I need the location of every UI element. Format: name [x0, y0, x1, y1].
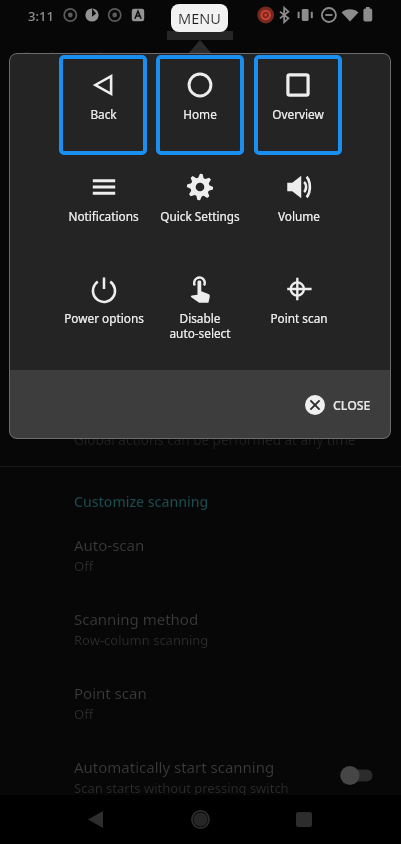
button[interactable]: Volume — [251, 156, 346, 248]
staticText: CLOSE — [333, 397, 371, 414]
staticText: Switch Access — [20, 44, 162, 74]
staticText: Off — [74, 705, 94, 723]
staticText: Row-column scanning — [74, 631, 209, 649]
button[interactable]: Point scan — [74, 683, 147, 723]
button[interactable]: Automatically start scanning toggle — [332, 760, 384, 792]
button[interactable]: Automatically start scanning — [74, 757, 289, 797]
staticText: Point scan — [74, 683, 147, 703]
button[interactable]: Quick Settings — [152, 156, 247, 248]
button[interactable]: Point scan — [251, 258, 346, 350]
button[interactable]: Auto-scan — [74, 535, 145, 575]
staticText: Scanning method — [74, 609, 199, 629]
staticText: MENU — [178, 8, 221, 28]
staticText: Point scan — [270, 310, 328, 326]
staticText: Off — [74, 557, 94, 575]
button[interactable]: Home — [156, 55, 244, 155]
button[interactable]: Home — [176, 795, 225, 844]
staticText: 3:11 — [28, 7, 54, 25]
staticText: Notifications — [68, 208, 139, 224]
staticText: Scan starts without pressing switch — [74, 779, 289, 797]
button[interactable]: Overview — [254, 55, 342, 155]
staticText: Home — [183, 106, 217, 122]
staticText: Automatically start scanning — [74, 757, 275, 777]
staticText: Customize scanning — [74, 492, 209, 511]
button[interactable]: Back — [59, 55, 147, 155]
button[interactable]: Back — [71, 795, 120, 844]
staticText: Global actions can be performed at any t… — [74, 431, 356, 449]
button[interactable]: Power options — [56, 258, 151, 350]
staticText: Quick Settings — [160, 208, 240, 224]
staticText: Back — [90, 106, 117, 122]
button[interactable]: Notifications — [56, 156, 151, 248]
button[interactable]: MENU — [171, 4, 228, 32]
staticText: Auto-scan — [74, 535, 145, 555]
staticText: Volume — [278, 208, 320, 224]
button[interactable]: CLOSE — [305, 387, 371, 423]
button[interactable]: Scanning method — [74, 609, 209, 649]
staticText: Disable auto-select — [169, 310, 231, 341]
staticText: Power options — [64, 310, 144, 326]
staticText: Overview — [272, 106, 324, 122]
button[interactable]: Recent apps — [279, 795, 328, 844]
button[interactable]: Disable auto-select — [152, 258, 247, 350]
